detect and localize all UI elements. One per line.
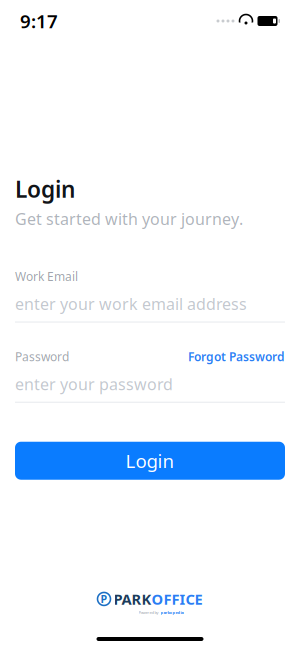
staticText: Get started with your journey. — [15, 208, 243, 229]
staticText: Login — [15, 174, 75, 204]
staticText: Forgot Password — [188, 348, 285, 364]
staticText: enter your work email address — [15, 293, 247, 314]
staticText: Login — [125, 448, 174, 473]
button[interactable]: Login — [15, 442, 285, 480]
staticText: Password — [15, 348, 69, 364]
staticText: OFFICE — [151, 589, 202, 609]
staticText: P — [100, 592, 107, 606]
staticText: 9:17 — [20, 9, 58, 33]
staticText: Powered by — [138, 610, 158, 615]
staticText: enter your password — [15, 373, 173, 395]
staticText: PARK — [113, 589, 151, 609]
staticText: Work Email — [15, 268, 78, 284]
staticText: parkopedia — [160, 610, 183, 615]
button[interactable]: Forgot Password — [188, 348, 285, 364]
